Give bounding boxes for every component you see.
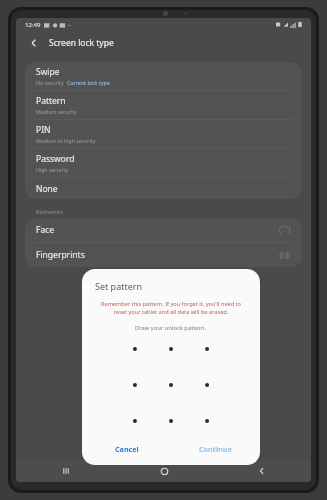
staticText: 12:49	[25, 21, 41, 29]
staticText: Set pattern	[95, 280, 143, 292]
staticText: Medium security	[36, 108, 77, 115]
staticText: Biometrics	[36, 208, 63, 215]
button[interactable]: Swipe	[25, 62, 302, 90]
button[interactable]: Continue	[171, 436, 260, 462]
staticText: Fingerprints	[36, 249, 85, 261]
button[interactable]: Home	[115, 460, 213, 482]
staticText: Medium to high security	[36, 137, 96, 144]
button[interactable]: Face	[25, 218, 302, 242]
button[interactable]: PIN	[25, 120, 302, 148]
button[interactable]: Recent apps	[16, 460, 115, 482]
staticText: Draw your unlock pattern.	[135, 324, 207, 332]
staticText: Continue	[199, 444, 232, 454]
staticText: High security	[36, 166, 69, 173]
staticText: No security	[36, 79, 64, 86]
staticText: Current lock type	[67, 79, 110, 86]
staticText: Remember this pattern. If you forget it,…	[94, 300, 248, 316]
button[interactable]: Password	[25, 149, 302, 177]
staticText: Swipe	[36, 66, 60, 78]
button[interactable]: Back	[25, 34, 43, 52]
staticText: Pattern	[36, 95, 66, 107]
button[interactable]: Pattern	[25, 91, 302, 119]
staticText: Cancel	[115, 444, 139, 454]
staticText: Face	[36, 224, 55, 236]
staticText: PIN	[36, 124, 51, 136]
button[interactable]: None	[25, 178, 302, 199]
staticText: Screen lock type	[49, 37, 114, 49]
staticText: None	[36, 183, 58, 195]
button[interactable]: Back	[213, 460, 311, 482]
button[interactable]: Cancel	[82, 436, 171, 462]
button[interactable]: Fingerprints	[25, 243, 302, 267]
staticText: Password	[36, 153, 75, 165]
